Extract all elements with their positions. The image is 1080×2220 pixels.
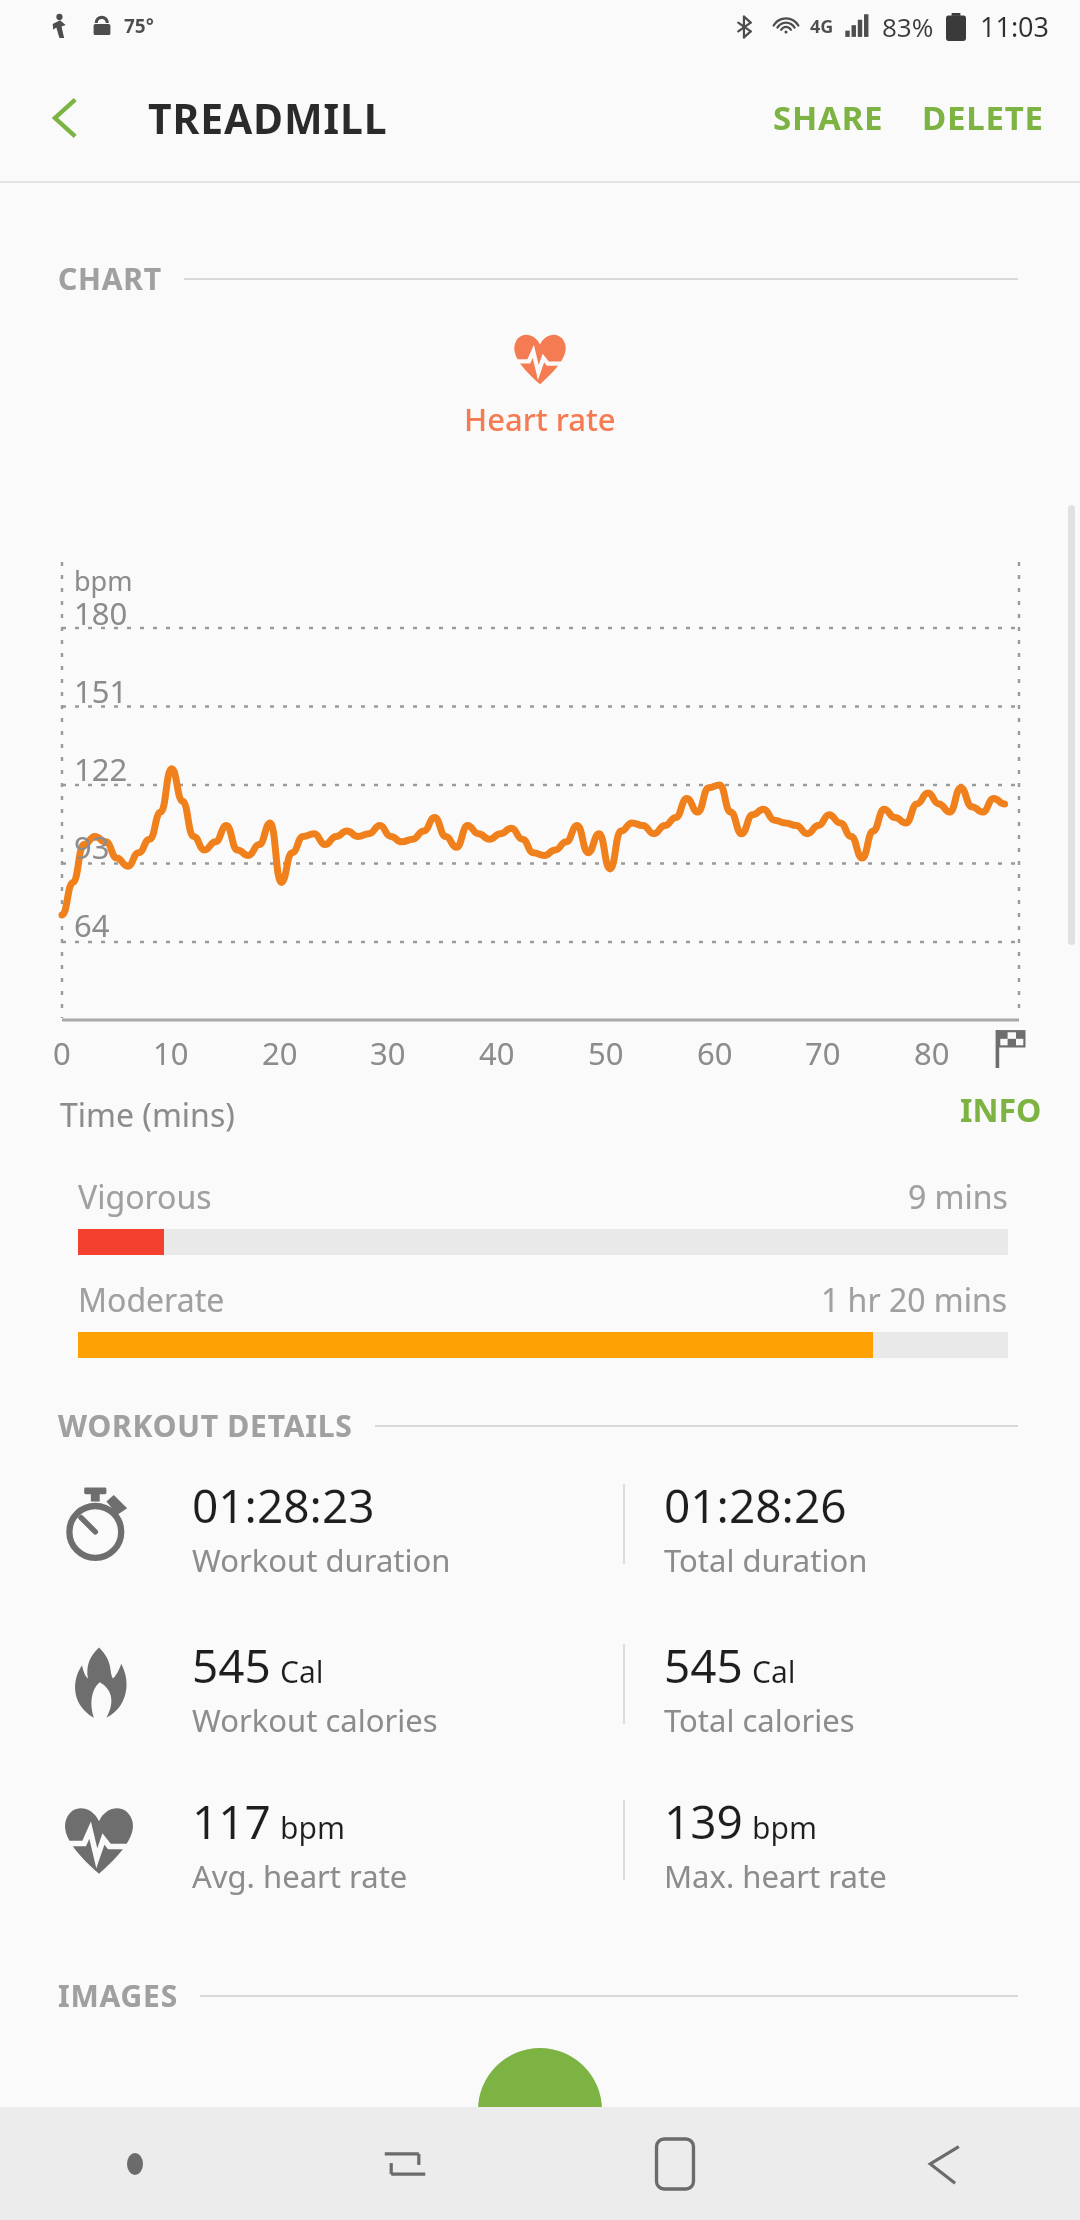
- staticText: 80: [914, 1032, 950, 1074]
- staticText: Workout calories: [192, 1699, 438, 1741]
- staticText: 70: [805, 1032, 841, 1074]
- staticText: Time (mins): [60, 1093, 235, 1137]
- button[interactable]: INFO: [922, 1080, 1080, 1140]
- staticText: DELETE: [922, 95, 1044, 140]
- staticText: 151: [74, 670, 128, 712]
- button[interactable]: Back: [901, 2120, 989, 2208]
- staticText: Vigorous: [78, 1175, 212, 1219]
- button[interactable]: More: [91, 2120, 179, 2208]
- staticText: 64: [74, 904, 110, 946]
- staticText: bpm: [280, 1807, 345, 1848]
- staticText: 30: [370, 1032, 406, 1074]
- staticText: 01:28:23: [192, 1474, 375, 1537]
- staticText: 01:28:26: [664, 1474, 847, 1537]
- staticText: 180: [74, 592, 128, 634]
- staticText: 75°: [124, 13, 154, 39]
- staticText: Heart rate: [464, 398, 616, 440]
- button[interactable]: Navigate up: [26, 78, 106, 158]
- button[interactable]: Recents: [361, 2120, 449, 2208]
- staticText: Cal: [752, 1651, 796, 1692]
- staticText: WORKOUT DETAILS: [58, 1405, 353, 1446]
- staticText: Total calories: [664, 1699, 855, 1741]
- staticText: Workout duration: [192, 1539, 451, 1581]
- staticText: 545: [664, 1634, 743, 1697]
- staticText: TREADMILL: [148, 90, 388, 146]
- button[interactable]: Home: [631, 2120, 719, 2208]
- staticText: INFO: [960, 1088, 1042, 1132]
- staticText: 122: [74, 748, 128, 790]
- staticText: 50: [588, 1032, 624, 1074]
- staticText: 93: [74, 826, 110, 868]
- staticText: bpm: [74, 562, 133, 599]
- staticText: 20: [262, 1032, 298, 1074]
- button[interactable]: SHARE: [753, 71, 904, 164]
- staticText: Max. heart rate: [664, 1855, 887, 1897]
- staticText: bpm: [752, 1807, 817, 1848]
- button[interactable]: DELETE: [904, 71, 1080, 164]
- staticText: 11:03: [980, 8, 1050, 45]
- staticText: Cal: [280, 1651, 324, 1692]
- staticText: IMAGES: [58, 1975, 178, 2016]
- staticText: Total duration: [664, 1539, 868, 1581]
- staticText: 139: [664, 1790, 743, 1853]
- staticText: SHARE: [773, 95, 884, 140]
- staticText: Moderate: [78, 1278, 225, 1322]
- staticText: 10: [153, 1032, 189, 1074]
- staticText: 545: [192, 1634, 271, 1697]
- staticText: 1 hr 20 mins: [821, 1278, 1008, 1322]
- staticText: Avg. heart rate: [192, 1855, 408, 1897]
- staticText: 4G: [810, 14, 834, 39]
- staticText: 83%: [882, 9, 934, 44]
- staticText: 60: [697, 1032, 733, 1074]
- staticText: 9 mins: [908, 1175, 1008, 1219]
- staticText: 0: [53, 1032, 71, 1074]
- staticText: CHART: [58, 258, 162, 299]
- button[interactable]: Add image: [478, 2048, 602, 2172]
- staticText: 40: [479, 1032, 515, 1074]
- staticText: 117: [192, 1790, 271, 1853]
